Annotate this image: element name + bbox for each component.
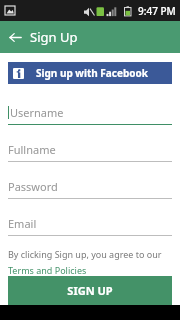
staticText: Fullname	[8, 142, 56, 157]
staticText: Terms and Policies	[8, 264, 87, 276]
staticText: Sign Up	[30, 28, 78, 46]
staticText: Password	[8, 179, 58, 194]
button[interactable]: SIGN UP	[8, 276, 172, 305]
button[interactable]: Sign up with Facebook	[8, 62, 172, 84]
staticText: By clicking Sign up, you agree to our	[8, 248, 162, 260]
staticText: Username	[10, 105, 64, 120]
staticText: Email	[8, 216, 37, 231]
button[interactable]: Username	[8, 105, 172, 125]
button[interactable]: Fullname	[8, 142, 172, 162]
staticText: Sign up with Facebook	[36, 66, 148, 80]
button[interactable]: Terms and Policies	[8, 264, 87, 276]
button[interactable]: Password	[8, 179, 172, 199]
staticText: 9:47 PM	[138, 4, 176, 18]
button[interactable]: Email	[8, 216, 172, 236]
button[interactable]: Back	[0, 21, 30, 53]
staticText: SIGN UP	[67, 283, 113, 298]
